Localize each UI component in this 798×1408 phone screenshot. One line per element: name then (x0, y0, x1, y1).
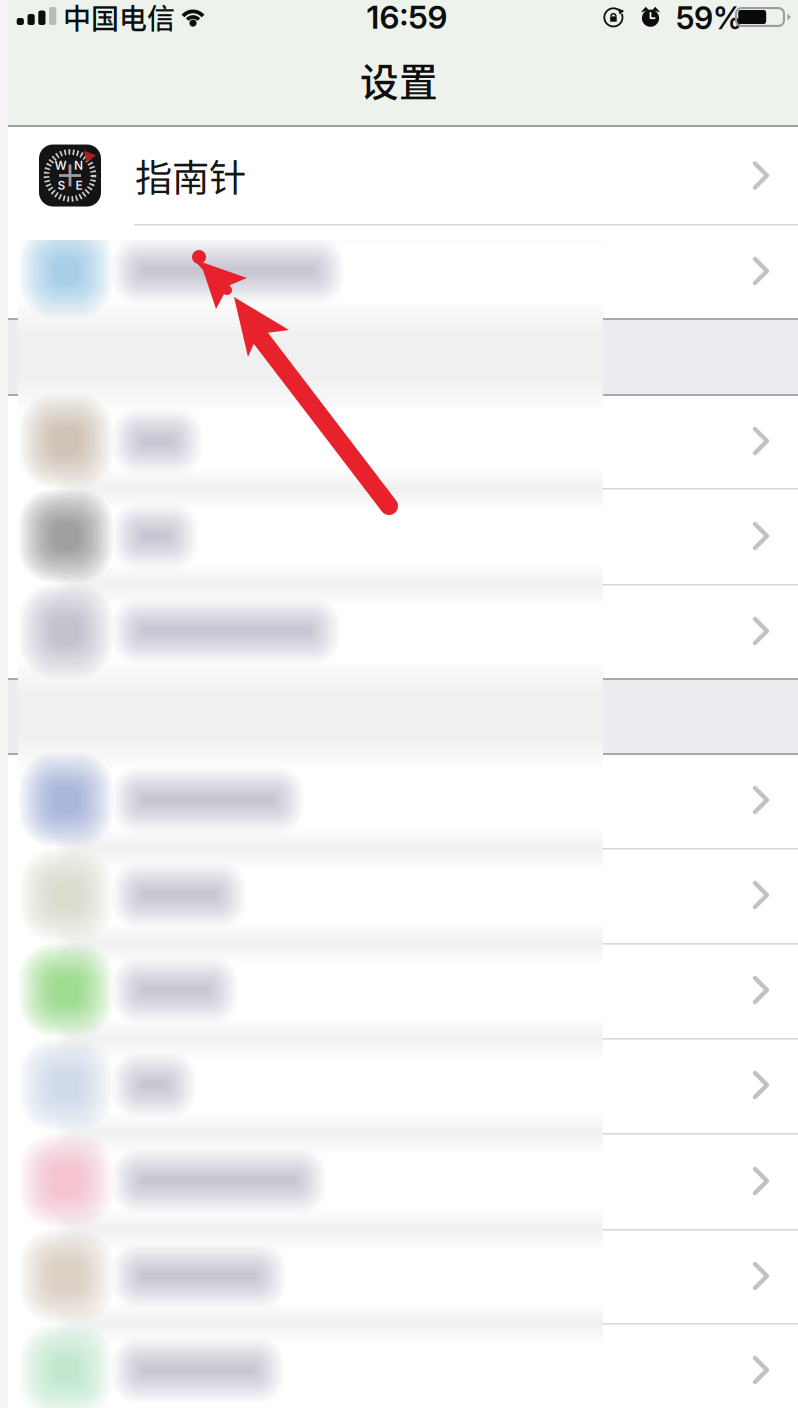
button[interactable]: Open settings item (731, 770, 791, 830)
button[interactable]: Open settings item (731, 1246, 791, 1306)
staticText: N (74, 158, 83, 173)
button[interactable]: Open settings item (731, 601, 791, 661)
staticText: 设置 (360, 51, 438, 107)
staticText: W (54, 158, 66, 173)
button[interactable]: Open settings item (731, 1055, 791, 1115)
button[interactable]: N (0, 128, 798, 223)
button[interactable]: Open settings item (731, 960, 791, 1020)
staticText: 16:59 (366, 0, 447, 36)
button[interactable]: Open settings item (731, 506, 791, 566)
staticText: 中国电信 (63, 0, 175, 37)
button[interactable]: Open settings item (731, 1151, 791, 1211)
staticText: 指南针 (135, 148, 246, 203)
button[interactable]: Open settings item (731, 865, 791, 925)
button[interactable]: Open settings item (731, 411, 791, 471)
button[interactable]: Open settings item (731, 241, 791, 301)
button[interactable]: Open settings item (731, 1340, 791, 1400)
staticText: 59% (676, 0, 742, 36)
staticText: E (75, 178, 82, 193)
staticText: S (57, 178, 65, 193)
